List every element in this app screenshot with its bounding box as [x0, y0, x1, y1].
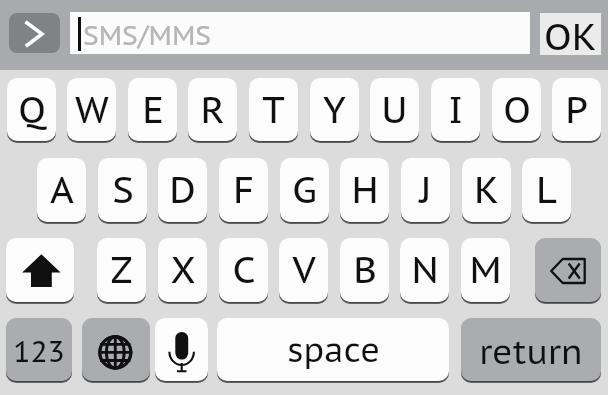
- staticText: J: [419, 165, 432, 213]
- button[interactable]: S: [98, 158, 147, 222]
- button[interactable]: X: [158, 238, 207, 302]
- button[interactable]: C: [219, 238, 268, 302]
- staticText: return: [479, 329, 583, 373]
- button[interactable]: M: [461, 238, 510, 302]
- staticText: B: [353, 245, 377, 293]
- staticText: Y: [323, 85, 346, 133]
- staticText: P: [565, 85, 588, 133]
- button[interactable]: Shift: [6, 238, 74, 302]
- staticText: O: [503, 85, 531, 133]
- button[interactable]: OK: [540, 13, 601, 55]
- staticText: Z: [110, 245, 133, 293]
- button[interactable]: I: [431, 78, 480, 141]
- button[interactable]: E: [128, 78, 177, 141]
- button[interactable]: K: [462, 158, 511, 222]
- staticText: Q: [18, 85, 46, 133]
- button[interactable]: Switch language: [82, 318, 150, 381]
- button[interactable]: Q: [7, 78, 56, 141]
- staticText: A: [50, 165, 74, 213]
- button[interactable]: Backspace: [535, 238, 601, 302]
- button[interactable]: return: [461, 318, 601, 381]
- staticText: N: [411, 245, 439, 293]
- staticText: C: [232, 245, 256, 293]
- button[interactable]: J: [401, 158, 450, 222]
- button[interactable]: Send: [9, 13, 60, 53]
- staticText: E: [142, 85, 164, 133]
- button[interactable]: SMS/MMS: [70, 12, 530, 54]
- button[interactable]: B: [340, 238, 389, 302]
- staticText: W: [75, 85, 109, 133]
- staticText: S: [112, 165, 134, 213]
- button[interactable]: A: [37, 158, 86, 222]
- button[interactable]: Y: [310, 78, 359, 141]
- staticText: space: [287, 328, 380, 371]
- button[interactable]: F: [219, 158, 268, 222]
- button[interactable]: 123: [6, 318, 72, 381]
- button[interactable]: T: [249, 78, 298, 141]
- staticText: SMS/MMS: [83, 18, 212, 53]
- button[interactable]: L: [522, 158, 571, 222]
- staticText: U: [381, 85, 408, 133]
- button[interactable]: P: [552, 78, 601, 141]
- staticText: M: [469, 245, 502, 293]
- button[interactable]: Voice input: [155, 318, 208, 381]
- button[interactable]: D: [158, 158, 207, 222]
- button[interactable]: G: [280, 158, 329, 222]
- staticText: F: [233, 165, 254, 213]
- staticText: R: [200, 85, 225, 133]
- button[interactable]: W: [67, 78, 116, 141]
- button[interactable]: N: [400, 238, 449, 302]
- staticText: D: [169, 165, 196, 213]
- staticText: 123: [13, 332, 65, 370]
- staticText: I: [448, 85, 463, 133]
- button[interactable]: O: [492, 78, 541, 141]
- button[interactable]: space: [217, 318, 449, 381]
- button[interactable]: R: [188, 78, 237, 141]
- staticText: OK: [544, 12, 597, 54]
- staticText: V: [292, 245, 316, 293]
- staticText: G: [292, 165, 317, 213]
- button[interactable]: V: [279, 238, 328, 302]
- button[interactable]: H: [340, 158, 389, 222]
- staticText: L: [536, 165, 557, 213]
- staticText: X: [170, 245, 196, 293]
- staticText: H: [351, 165, 379, 213]
- staticText: T: [262, 85, 285, 133]
- button[interactable]: Z: [97, 238, 146, 302]
- staticText: K: [474, 165, 499, 213]
- button[interactable]: U: [370, 78, 419, 141]
